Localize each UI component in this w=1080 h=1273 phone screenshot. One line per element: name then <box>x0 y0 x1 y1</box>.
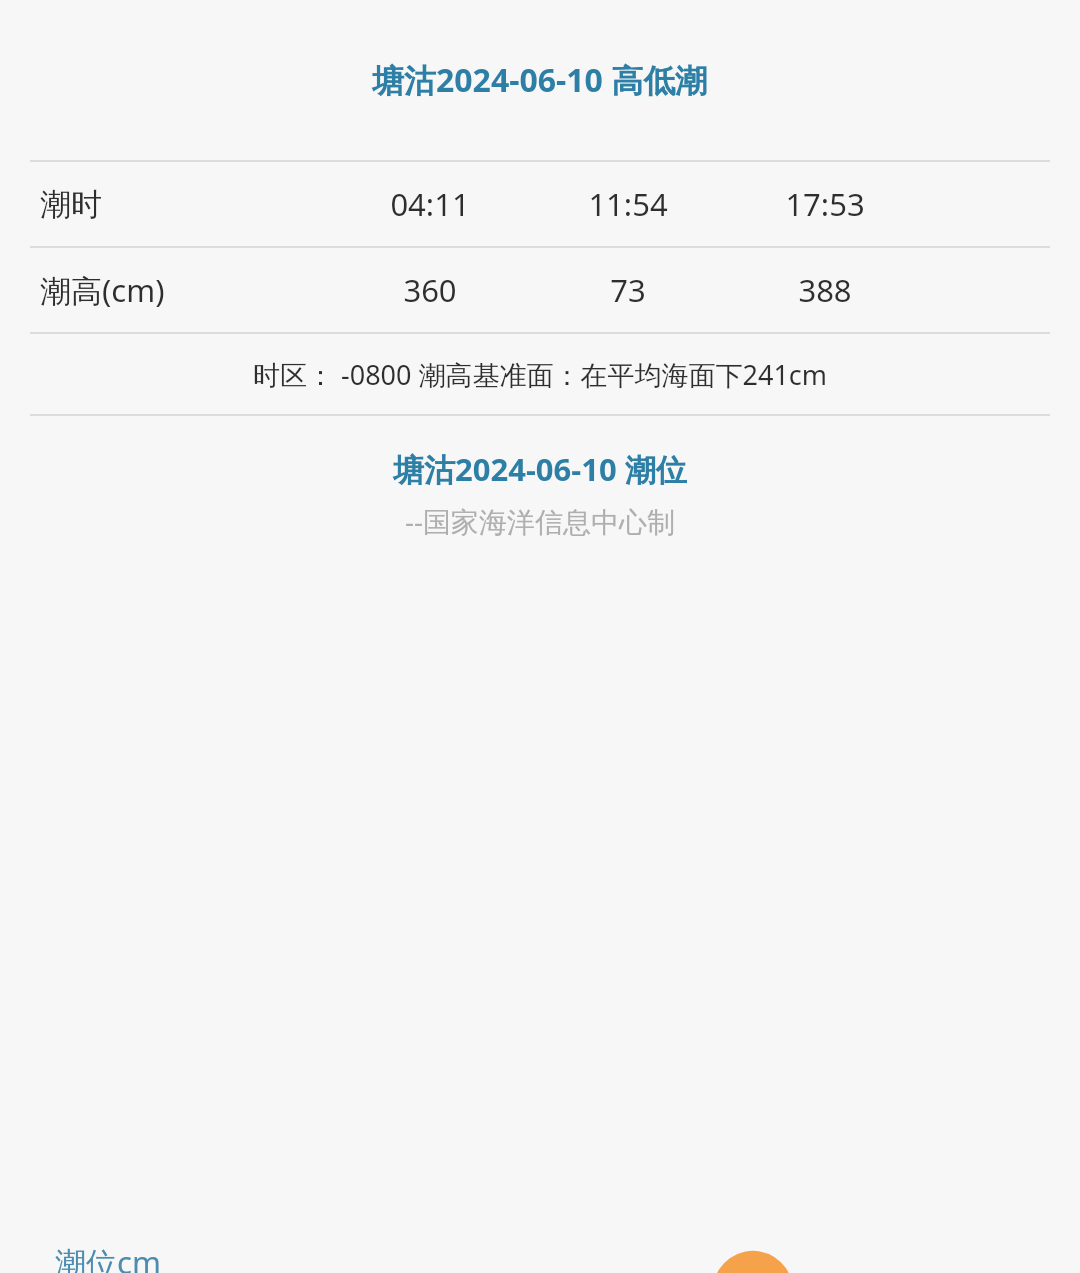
other: 潮位曲线图 <box>0 579 1080 1273</box>
staticText: 11:54 <box>588 183 668 225</box>
staticText: 388 <box>798 269 852 311</box>
staticText: 潮时 <box>40 185 102 224</box>
button[interactable]: 潮高(cm) <box>0 248 1080 332</box>
staticText: 塘沽2024-06-10 高低潮 <box>372 58 708 102</box>
staticText: --国家海洋信息中心制 <box>405 502 676 540</box>
staticText: 360 <box>403 269 457 311</box>
staticText: 时区： -0800 潮高基准面：在平均海面下241cm <box>253 356 828 393</box>
staticText: 73 <box>610 269 646 311</box>
staticText: 04:11 <box>390 183 470 225</box>
button[interactable]: 塘沽2024-06-10 高低潮 <box>0 0 1080 160</box>
staticText: 17:53 <box>785 183 865 225</box>
staticText: 潮高(cm) <box>40 269 165 311</box>
button[interactable]: 潮时 <box>0 162 1080 246</box>
staticText: 塘沽2024-06-10 潮位 <box>393 448 687 490</box>
